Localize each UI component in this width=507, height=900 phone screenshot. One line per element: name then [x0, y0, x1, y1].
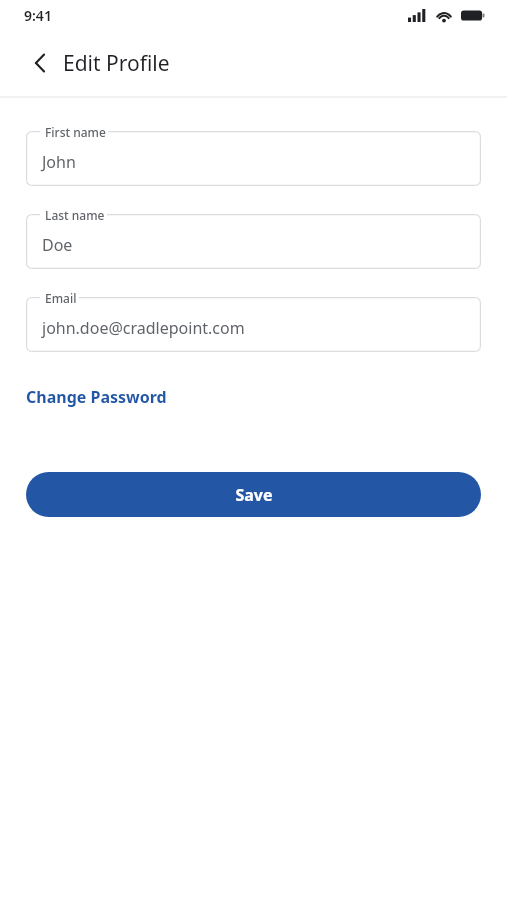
staticText: Last name	[45, 207, 105, 223]
staticText: Change Password	[26, 386, 167, 408]
button[interactable]: Last name	[26, 214, 481, 269]
staticText: First name	[45, 124, 106, 140]
button[interactable]: Email	[26, 297, 481, 352]
staticText: Email	[45, 290, 77, 306]
staticText: Edit Profile	[63, 49, 170, 78]
button[interactable]: Change Password	[26, 382, 167, 412]
staticText: John	[42, 151, 76, 173]
staticText: john.doe@cradlepoint.com	[42, 317, 245, 339]
staticText: Doe	[42, 234, 73, 256]
button[interactable]: First name	[26, 131, 481, 186]
button[interactable]: Save	[26, 472, 481, 517]
button[interactable]: Back	[20, 43, 60, 83]
staticText: 9:41	[24, 6, 52, 25]
staticText: Save	[235, 484, 273, 506]
